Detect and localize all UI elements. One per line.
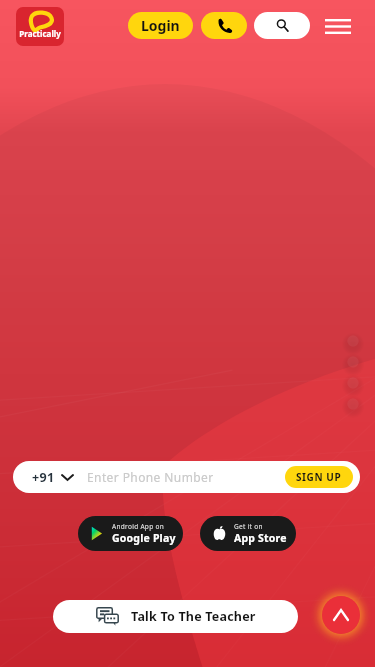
button[interactable]: Call us (201, 12, 247, 39)
staticText: App Store (234, 531, 287, 545)
staticText: Enter Phone Number (87, 469, 214, 485)
staticText: Get it on (234, 522, 263, 531)
button[interactable]: Practically logo (16, 7, 64, 46)
button[interactable]: Talk To The Teacher (53, 600, 298, 633)
button[interactable]: Scroll to top (322, 596, 360, 634)
button[interactable]: Section 3 (342, 372, 364, 394)
button[interactable]: +91 (32, 469, 73, 486)
staticText: Login (141, 16, 180, 35)
staticText: SIGN UP (296, 470, 342, 484)
staticText: Talk To The Teacher (131, 608, 256, 625)
button[interactable]: Section 1 (342, 330, 364, 352)
button[interactable]: Section 2 (342, 351, 364, 373)
staticText: +91 (32, 469, 55, 486)
button[interactable]: Menu (318, 11, 358, 41)
button[interactable]: Section 4 (342, 393, 364, 415)
staticText: Google Play (112, 531, 176, 545)
staticText: Android App on (112, 522, 165, 531)
button[interactable]: Get it on (200, 516, 296, 551)
button[interactable]: Login (128, 12, 193, 39)
button[interactable]: Android App on (78, 516, 183, 551)
staticText: Practically (19, 28, 61, 39)
button[interactable]: SIGN UP (285, 466, 353, 488)
button[interactable]: Search (254, 12, 310, 39)
